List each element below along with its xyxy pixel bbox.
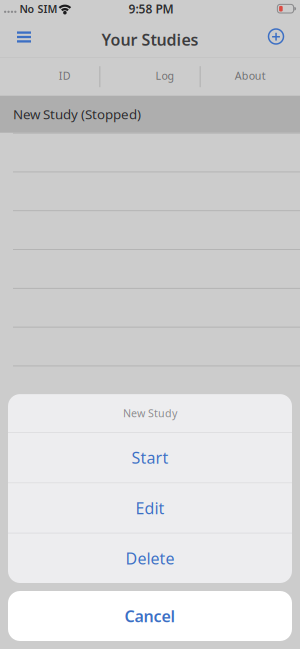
button[interactable]: Menu	[2, 22, 46, 57]
button[interactable]: Delete	[8, 533, 292, 583]
staticText: New Study (Stopped)	[13, 105, 141, 123]
staticText: About	[235, 69, 266, 83]
staticText: Your Studies	[101, 29, 198, 50]
button[interactable]: About	[201, 58, 300, 96]
button[interactable]: Log	[100, 58, 200, 96]
button[interactable]: Add study	[254, 22, 298, 57]
staticText: Edit	[135, 497, 164, 518]
staticText: No SIM	[19, 2, 57, 16]
staticText: 9:58 PM	[128, 1, 173, 17]
button[interactable]: New Study (Stopped)	[0, 96, 300, 133]
button[interactable]: Start	[8, 433, 292, 482]
button[interactable]: ID	[0, 58, 99, 96]
button[interactable]: Cancel	[8, 591, 292, 641]
staticText: ID	[59, 69, 71, 83]
staticText: New Study	[123, 406, 177, 420]
staticText: Start	[131, 447, 168, 468]
staticText: Log	[155, 69, 174, 83]
staticText: Cancel	[124, 605, 175, 627]
button[interactable]: Edit	[8, 483, 292, 533]
staticText: Delete	[125, 548, 174, 569]
